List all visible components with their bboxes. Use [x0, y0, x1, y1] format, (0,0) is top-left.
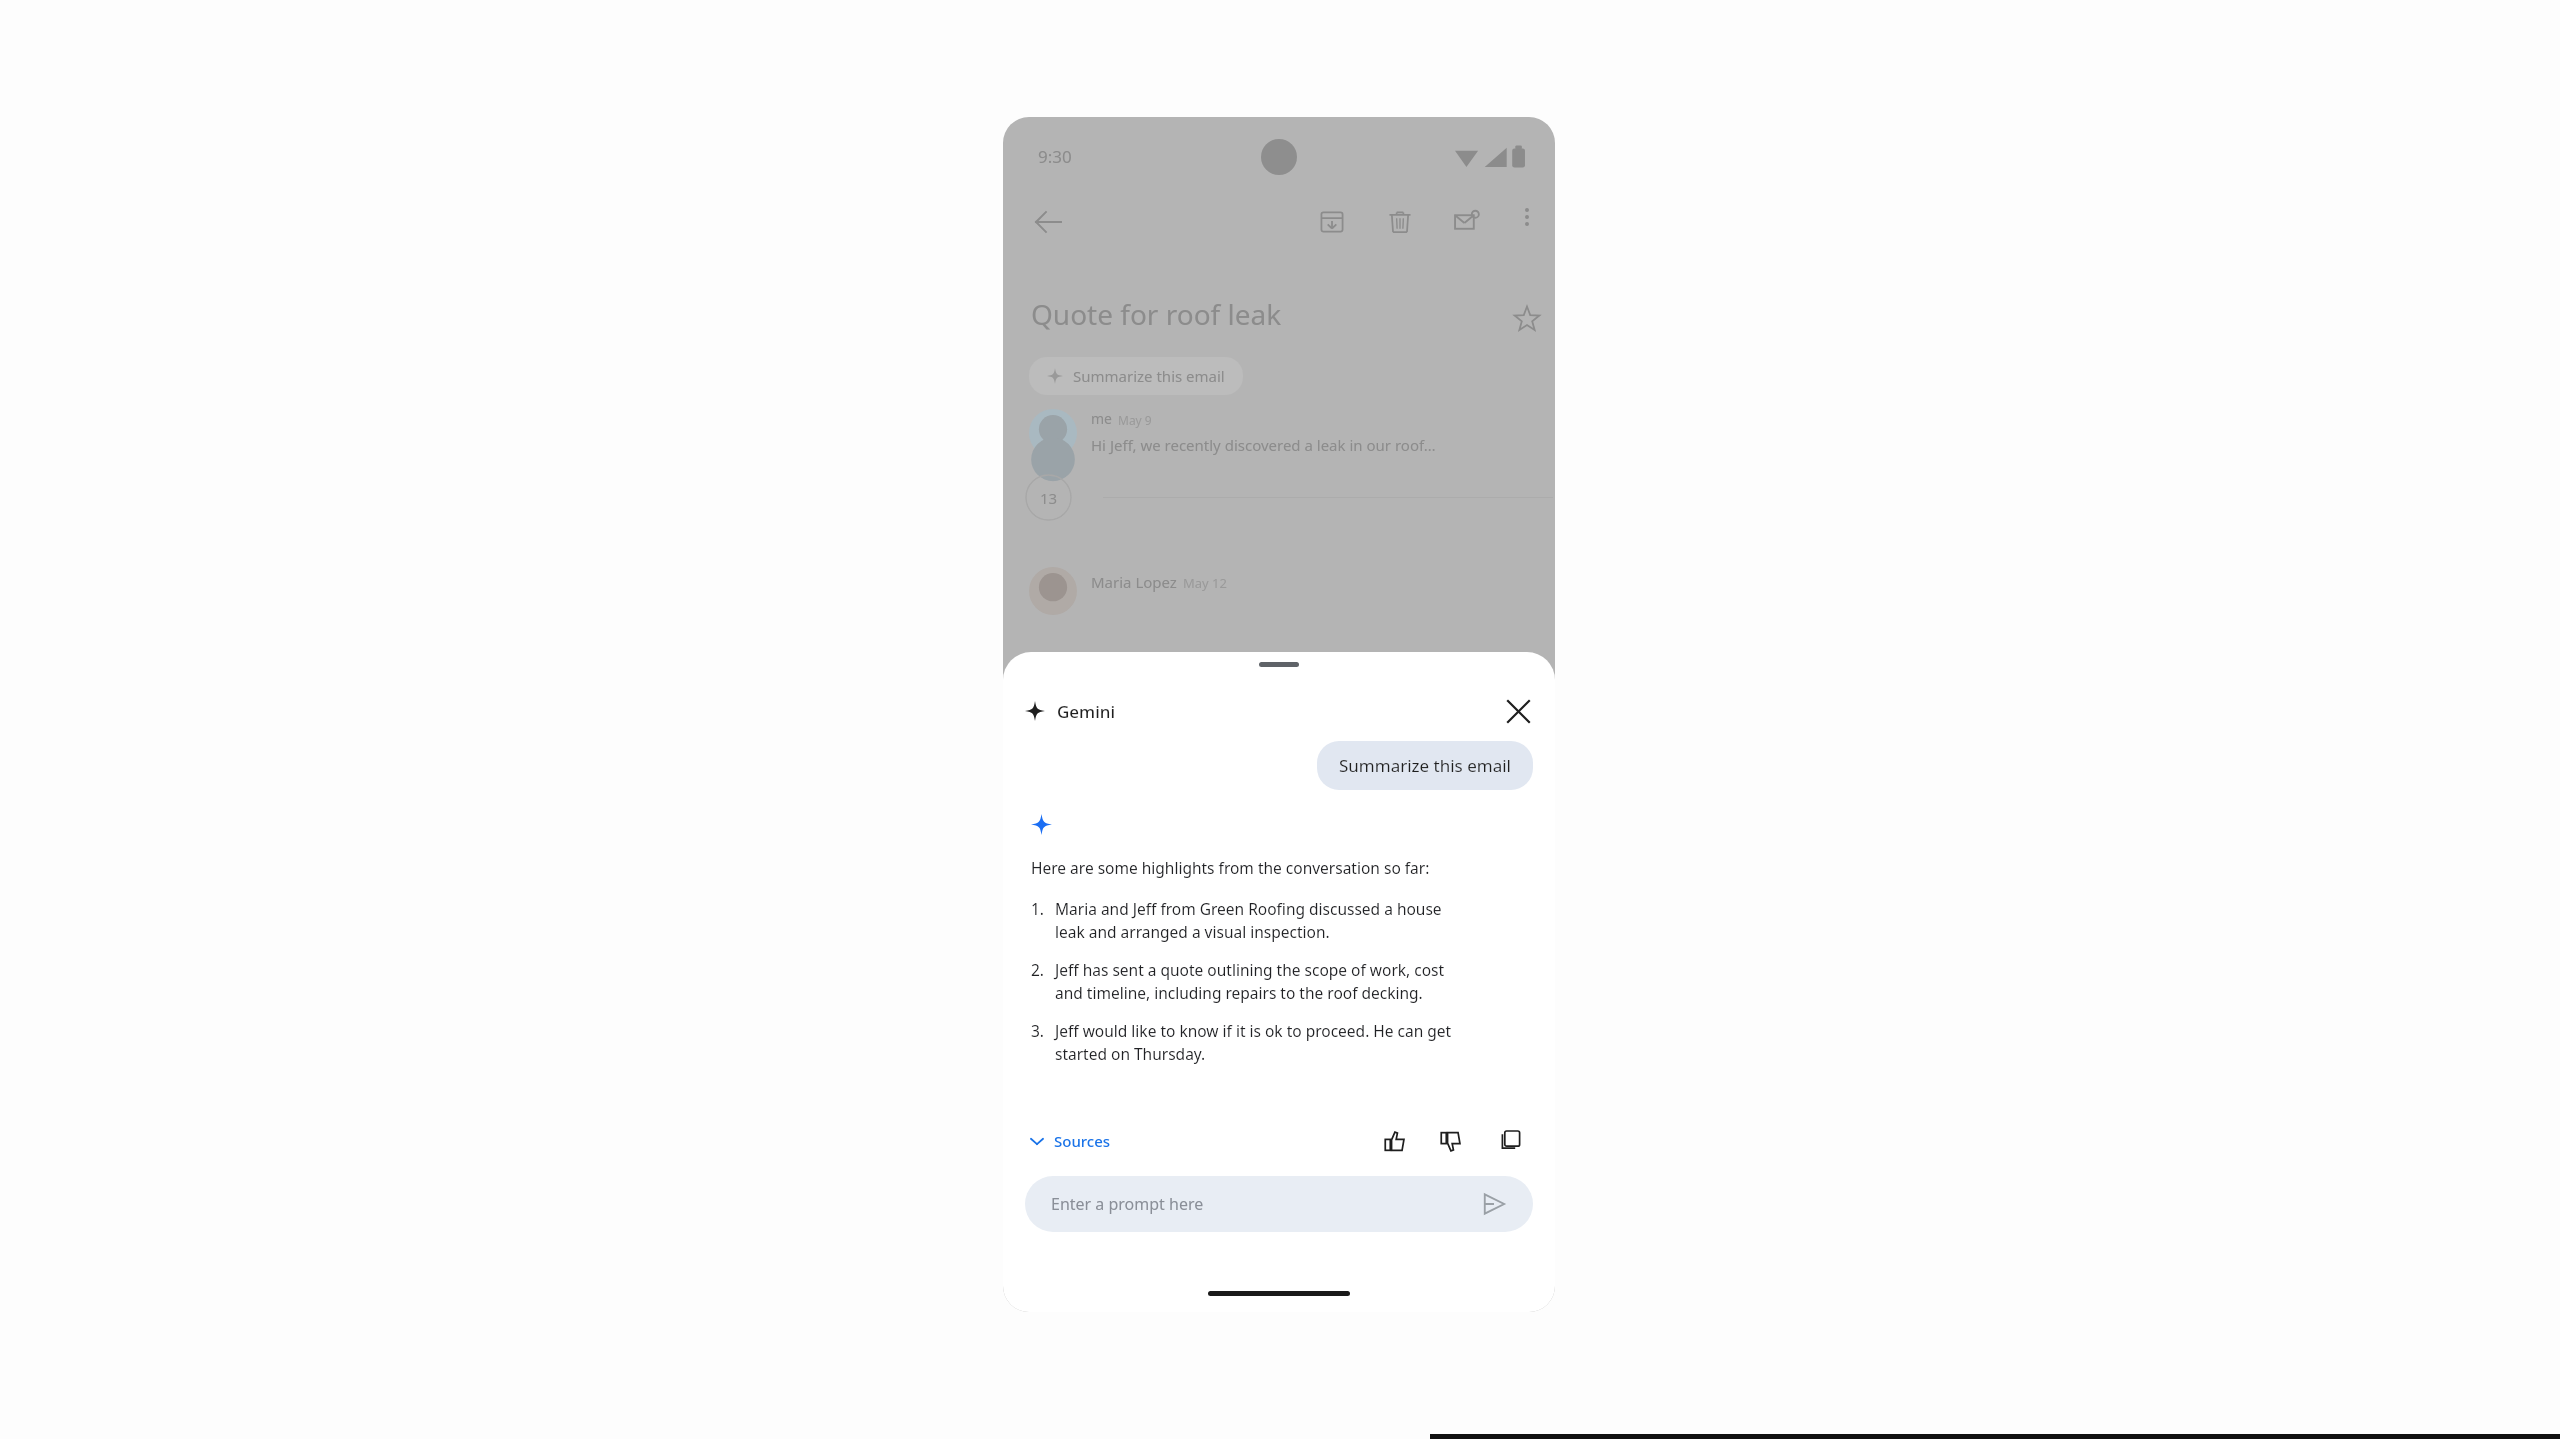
button[interactable]: Back: [1021, 195, 1075, 249]
staticText: Enter a prompt here: [1051, 1193, 1204, 1215]
button[interactable]: Archive: [1305, 195, 1359, 249]
staticText: 1.: [1031, 898, 1055, 919]
staticText: Maria Lopez: [1091, 572, 1177, 592]
staticText: May 9: [1118, 412, 1152, 428]
staticText: Quote for roof leak: [1031, 295, 1282, 333]
staticText: 9:30: [1038, 145, 1072, 168]
button[interactable]: Close: [1495, 688, 1541, 734]
button[interactable]: Sources: [1027, 1125, 1113, 1157]
button[interactable]: Summarize this email: [1029, 357, 1243, 395]
staticText: Here are some highlights from the conver…: [1031, 857, 1430, 878]
button[interactable]: Bad response: [1429, 1120, 1471, 1162]
staticText: 2.: [1031, 959, 1055, 980]
staticText: 13: [1040, 488, 1058, 508]
button[interactable]: 13: [1025, 474, 1072, 521]
staticText: 3.: [1031, 1020, 1055, 1041]
staticText: me: [1091, 409, 1112, 428]
staticText: Maria and Jeff from Green Roofing discus…: [1055, 898, 1442, 943]
staticText: Summarize this email: [1339, 754, 1511, 777]
button[interactable]: Star: [1503, 295, 1551, 343]
staticText: Hi Jeff, we recently discovered a leak i…: [1091, 435, 1531, 455]
staticText: Gemini: [1057, 700, 1116, 723]
staticText: Jeff would like to know if it is ok to p…: [1055, 1020, 1452, 1065]
button[interactable]: Summarize this email: [1317, 741, 1533, 790]
button[interactable]: Delete: [1373, 195, 1427, 249]
button[interactable]: Mark unread: [1440, 195, 1494, 249]
button[interactable]: More options: [1505, 195, 1549, 239]
button[interactable]: Copy: [1489, 1120, 1531, 1162]
staticText: Sources: [1054, 1131, 1111, 1151]
button[interactable]: Enter a prompt here: [1025, 1176, 1533, 1232]
staticText: Summarize this email: [1073, 366, 1225, 386]
staticText: Jeff has sent a quote outlining the scop…: [1055, 959, 1445, 1004]
button[interactable]: Send: [1477, 1187, 1511, 1221]
button[interactable]: Good response: [1373, 1120, 1415, 1162]
staticText: May 12: [1183, 574, 1227, 592]
